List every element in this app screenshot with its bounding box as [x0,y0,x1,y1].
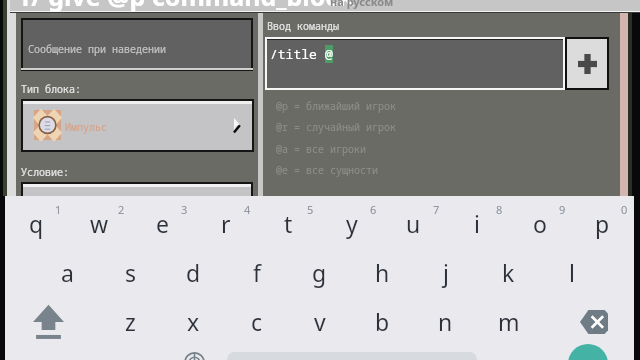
staticText: @p = ближайший игрок [276,99,396,113]
button[interactable]: g [288,248,351,297]
staticText: a [61,257,74,288]
staticText: @ [325,45,333,63]
staticText: p [595,208,610,239]
staticText: n [438,306,453,337]
staticText: s [125,257,137,288]
staticText: 8 [496,202,503,217]
staticText: j [443,257,449,288]
staticText: Ввод команды [267,19,339,33]
button[interactable]: f [225,248,288,297]
button[interactable]: Backspace [562,297,625,346]
button[interactable]: v [288,297,351,346]
button[interactable]: p [571,199,634,248]
button[interactable]: u [382,199,445,248]
staticText: @a = все игроки [276,142,366,156]
button[interactable] [21,182,253,198]
staticText: 5 [307,202,314,217]
staticText: z [125,306,136,337]
staticText: 7 [433,202,440,217]
button[interactable]: m [477,297,540,346]
button[interactable]: b [351,297,414,346]
staticText: g [312,257,327,288]
button[interactable]: c [225,297,288,346]
staticText: k [502,257,515,288]
button[interactable]: o [508,199,571,248]
staticText: h [375,257,390,288]
button[interactable]: j [414,248,477,297]
staticText: l [569,257,575,288]
staticText: w [90,208,109,239]
staticText: Сообщение при наведении [28,42,166,56]
button[interactable]: r [194,199,257,248]
button[interactable]: x [162,297,225,346]
staticText: i [474,208,480,239]
button[interactable]: Add command [565,37,609,90]
button[interactable]: n [414,297,477,346]
staticText: o [533,208,547,239]
staticText: c [251,306,263,337]
button[interactable]: q [5,199,68,248]
button[interactable]: i [445,199,508,248]
staticText: Тип блока: [21,82,81,96]
button[interactable]: w [68,199,131,248]
staticText: b [375,306,390,337]
button[interactable]: Shift [17,297,80,346]
staticText: /title [270,45,325,63]
staticText: r [221,208,231,239]
staticText: f [253,257,261,288]
button[interactable]: a [36,248,99,297]
staticText: x [187,306,200,337]
staticText: d [186,257,201,288]
staticText: на русском [330,0,394,9]
button[interactable]: Change language [163,346,226,360]
button[interactable]: t [257,199,320,248]
button[interactable]: e [131,199,194,248]
staticText: @e = все сущности [276,163,378,177]
staticText: v [314,306,326,337]
staticText: e [156,208,169,239]
button[interactable]: z [99,297,162,346]
button[interactable]: Сообщение при наведении [21,18,253,71]
staticText: t [284,208,293,239]
staticText: Импульс [65,120,107,134]
staticText: @r = случайный игрок [276,120,396,134]
staticText: 9 [559,202,566,217]
button[interactable]: Импульс [21,99,254,152]
button[interactable]: k [477,248,540,297]
staticText: q [29,208,44,239]
button[interactable]: h [351,248,414,297]
staticText: 4 [244,202,251,217]
button[interactable]: /title [265,37,565,90]
button[interactable]: y [320,199,383,248]
button[interactable]: s [99,248,162,297]
staticText: Условие: [21,165,69,179]
staticText: 6 [370,202,377,217]
staticText: 0 [621,202,628,217]
staticText: 3 [181,202,188,217]
staticText: 2 [118,202,125,217]
button[interactable]: d [162,248,225,297]
staticText: y [346,208,358,239]
staticText: u [406,208,421,239]
button[interactable]: l [540,248,603,297]
staticText: 1/ give @p command_block [17,0,354,13]
staticText: 1 [55,202,62,217]
staticText: m [498,306,520,337]
button[interactable]: Enter [568,344,608,360]
